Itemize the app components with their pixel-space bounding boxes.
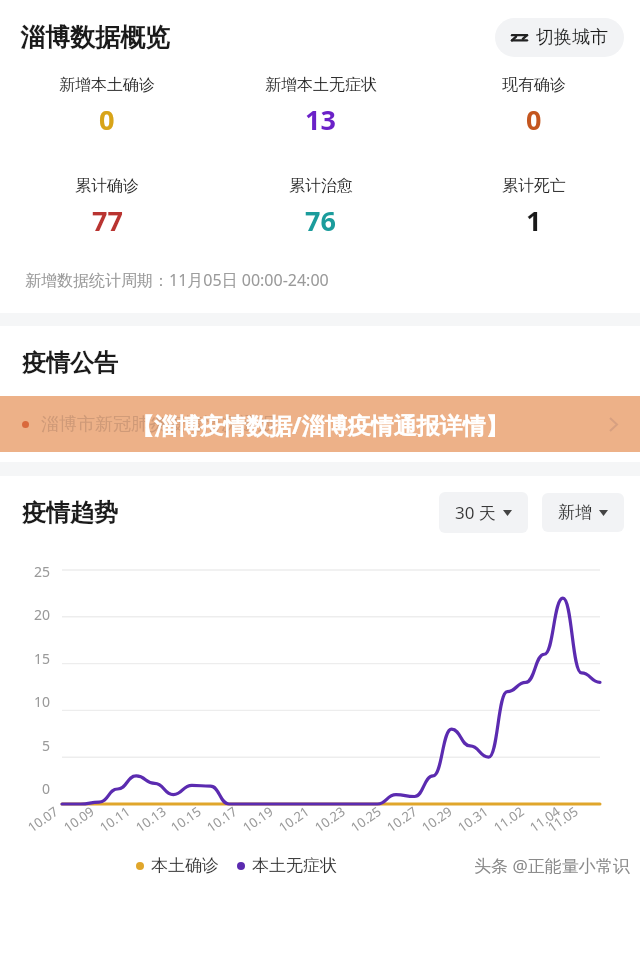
staticText: 新增数据统计周期：11月05日 00:00-24:00 <box>25 269 329 291</box>
staticText: 10.23 <box>311 802 349 836</box>
staticText: 30 天 <box>455 501 496 524</box>
button[interactable]: 新增 <box>542 493 624 532</box>
staticText: 10.29 <box>418 802 456 836</box>
staticText: 10.21 <box>275 802 313 836</box>
staticText: 15 <box>33 649 50 668</box>
staticText: 10.19 <box>239 802 277 836</box>
staticText: 10.13 <box>132 802 170 836</box>
staticText: 累计死亡 <box>502 176 566 196</box>
staticText: 淄博数据概览 <box>20 22 170 53</box>
staticText: 新增 <box>558 502 592 523</box>
staticText: 10.09 <box>60 802 98 836</box>
staticText: 11.05 <box>544 802 582 836</box>
staticText: 5 <box>41 736 50 755</box>
staticText: 77 <box>92 202 123 239</box>
staticText: 76 <box>305 202 336 239</box>
staticText: 本土无症状 <box>252 855 337 876</box>
staticText: 切换城市 <box>536 26 608 49</box>
staticText: 本土确诊 <box>151 855 219 876</box>
staticText: 【淄博疫情数据/淄博疫情通报详情】 <box>131 409 509 440</box>
staticText: 10 <box>33 692 50 711</box>
staticText: 头条 @正能量小常识 <box>474 854 630 877</box>
staticText: 11.04 <box>526 802 564 836</box>
staticText: 疫情趋势 <box>22 498 118 528</box>
staticText: 0 <box>99 101 115 138</box>
staticText: 25 <box>33 562 50 581</box>
staticText: 20 <box>33 605 50 624</box>
staticText: 11.02 <box>490 802 528 836</box>
button[interactable]: 淄博市新冠肺炎疫情情况通报 <box>0 396 640 452</box>
button[interactable]: 30 天 <box>439 492 528 533</box>
staticText: 10.07 <box>24 802 62 836</box>
staticText: 0 <box>526 101 542 138</box>
staticText: 1 <box>526 202 542 239</box>
button[interactable]: 本土确诊 <box>136 855 219 876</box>
button[interactable]: 本土无症状 <box>237 855 337 876</box>
button[interactable]: 切换城市 <box>495 18 624 57</box>
staticText: 10.25 <box>347 802 385 836</box>
staticText: 现有确诊 <box>502 75 566 95</box>
staticText: 13 <box>305 101 336 138</box>
staticText: 10.31 <box>454 802 492 836</box>
staticText: 新增本土无症状 <box>265 75 377 95</box>
staticText: 10.17 <box>203 802 241 836</box>
staticText: 0 <box>41 779 50 798</box>
staticText: 新增本土确诊 <box>59 75 155 95</box>
staticText: 淄博市新冠肺炎疫情情况通报 <box>41 413 275 436</box>
staticText: 10.15 <box>167 802 205 836</box>
staticText: 累计治愈 <box>289 176 353 196</box>
staticText: 疫情公告 <box>22 348 118 378</box>
staticText: 10.27 <box>383 802 421 836</box>
staticText: 累计确诊 <box>75 176 139 196</box>
staticText: 10.11 <box>96 802 134 836</box>
